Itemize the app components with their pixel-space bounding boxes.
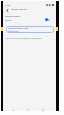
staticText: Enabled [5, 19, 12, 21]
button[interactable]: Back [11, 108, 15, 112]
staticText: Mobile tutorial [11, 8, 28, 11]
staticText: Learn more about wireless debugging [6, 37, 42, 40]
button[interactable]: Home [26, 108, 30, 112]
button[interactable]: Pair device with code [6, 26, 54, 33]
staticText: Pair device with code [8, 27, 29, 30]
button[interactable]: Wireless debug [3, 14, 56, 23]
staticText: 12:30 [5, 4, 11, 7]
button[interactable]: Recent apps [41, 108, 45, 112]
staticText: Pairing code [8, 30, 19, 32]
staticText: Wireless debug [5, 15, 20, 18]
button[interactable]: Toggle wireless debugging [45, 18, 50, 21]
button[interactable]: Navigate up [4, 7, 10, 13]
